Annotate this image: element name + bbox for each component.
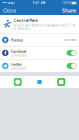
button[interactable]: Toggle sharing [67,50,77,56]
button[interactable]: Central Park [0,15,79,34]
staticText: Share [62,7,76,14]
button[interactable]: Share to Messages [57,78,65,86]
button[interactable]: Share [59,6,79,15]
button[interactable]: Share to WhatsApp [14,78,22,86]
staticText: Twitter [10,61,22,67]
staticText: Connected [10,67,26,70]
staticText: 100% [62,1,70,5]
staticText: Central Park [14,17,38,23]
staticText: Posting [10,37,22,42]
button[interactable]: Twitter [0,60,79,73]
button[interactable]: Facebook [0,47,79,60]
staticText: Facebook [10,48,26,54]
button[interactable]: Toggle sharing [67,63,77,69]
staticText: Automatic [64,38,77,42]
staticText: Connected [10,54,26,57]
button[interactable]: Close [0,6,19,15]
staticText: Close [3,7,16,14]
staticText: ••••• AT&T [2,1,15,5]
staticText: 9:41 AM [33,1,45,5]
button[interactable]: Share to Messenger [35,78,43,86]
staticText: London and Northern Railway run at 4.11 … [14,24,76,31]
button[interactable]: Posting [0,34,79,47]
